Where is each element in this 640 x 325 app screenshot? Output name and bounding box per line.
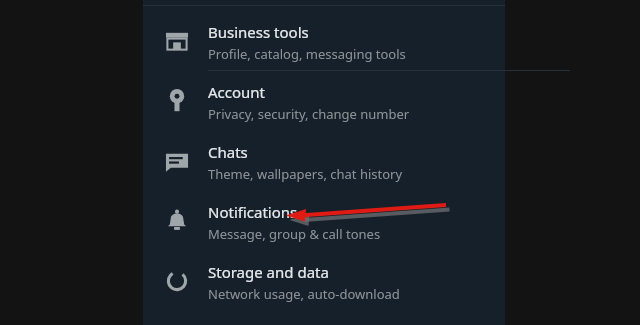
staticText: Profile, catalog, messaging tools — [208, 45, 406, 63]
staticText: Account — [208, 82, 266, 102]
staticText: Storage and data — [208, 262, 329, 282]
button[interactable]: Account — [143, 76, 505, 132]
staticText: Theme, wallpapers, chat history — [208, 165, 403, 183]
staticText: Chats — [208, 142, 248, 162]
other: Notifications — [165, 209, 189, 233]
staticText: Privacy, security, change number — [208, 105, 410, 123]
other: Storage and data — [165, 269, 189, 293]
staticText: Notifications — [208, 202, 298, 222]
button[interactable]: Chats — [143, 136, 505, 192]
other: Account — [165, 89, 189, 113]
button[interactable]: Storage and data — [143, 256, 505, 312]
other: Chats — [165, 149, 189, 173]
staticText: Network usage, auto-download — [208, 285, 400, 303]
button[interactable]: Business tools — [143, 16, 505, 72]
staticText: Message, group & call tones — [208, 225, 381, 243]
other: Business tools — [165, 29, 189, 53]
staticText: Business tools — [208, 22, 309, 42]
button[interactable]: Notifications — [143, 196, 505, 252]
